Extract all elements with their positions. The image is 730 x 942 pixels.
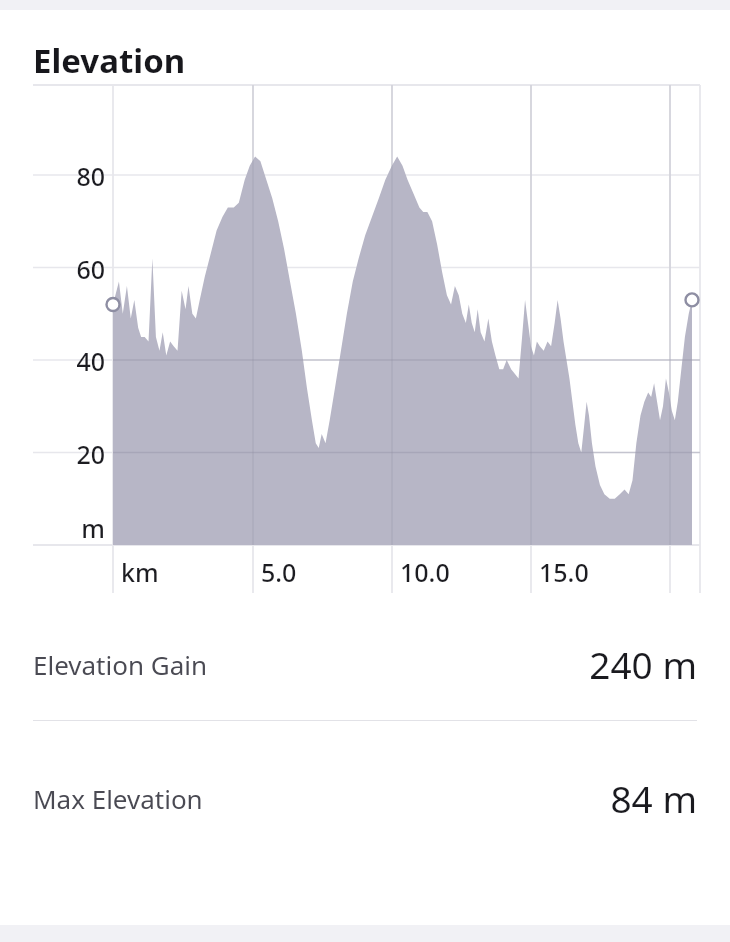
staticText: Max Elevation [33, 781, 203, 816]
staticText: Elevation [33, 38, 186, 83]
staticText: 10.0 [400, 555, 450, 589]
staticText: Elevation Gain [33, 647, 208, 682]
staticText: 20 [76, 437, 105, 471]
button[interactable]: Elevation Gain [0, 608, 730, 720]
staticText: 40 [76, 344, 105, 378]
staticText: 84 m [610, 773, 697, 823]
staticText: 60 [76, 252, 105, 286]
staticText: 15.0 [539, 555, 589, 589]
staticText: 5.0 [261, 555, 297, 589]
staticText: km [121, 555, 159, 589]
staticText: m [81, 511, 105, 545]
staticText: 240 m [589, 639, 697, 689]
staticText: 80 [76, 159, 105, 193]
button[interactable]: Max Elevation [0, 721, 730, 875]
